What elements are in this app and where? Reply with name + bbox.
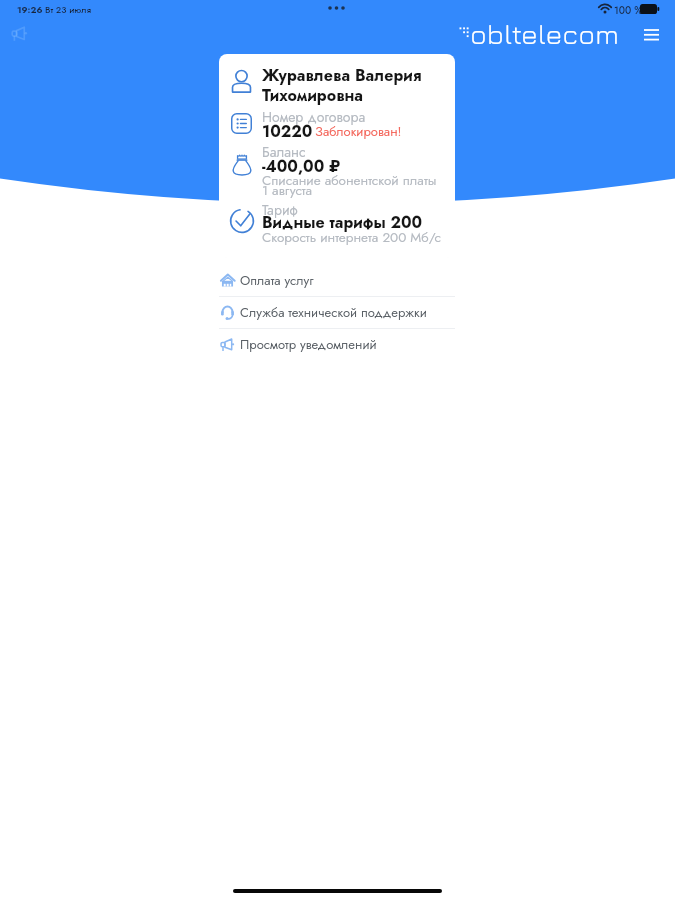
- staticText: Видные тарифы 200: [262, 211, 423, 234]
- staticText: Тариф: [262, 200, 298, 220]
- button[interactable]: Notifications: [8, 22, 31, 45]
- staticText: -400,00 ₽: [262, 155, 341, 178]
- staticText: Оплата услуг: [240, 271, 314, 290]
- staticText: 10220: [262, 120, 313, 143]
- button[interactable]: obltelecom: [458, 17, 620, 47]
- staticText: obltelecom: [470, 17, 620, 47]
- staticText: Вт 23 июля: [45, 3, 92, 16]
- staticText: Списание абонентской платы: [262, 171, 437, 191]
- staticText: 19:26: [17, 3, 43, 16]
- staticText: Тихомировна: [262, 84, 364, 107]
- staticText: Просмотр уведомлений: [240, 335, 377, 354]
- button[interactable]: Menu: [638, 21, 664, 47]
- button[interactable]: Просмотр уведомлений: [219, 329, 455, 360]
- button[interactable]: Служба технической поддержки: [219, 297, 455, 328]
- staticText: Служба технической поддержки: [240, 303, 427, 322]
- staticText: Баланс: [262, 142, 306, 162]
- staticText: Заблокирован!: [315, 122, 402, 141]
- button[interactable]: Оплата услуг: [219, 265, 455, 296]
- staticText: 100 %: [614, 3, 643, 17]
- staticText: Журавлева Валерия: [262, 64, 422, 87]
- staticText: 1 августа: [262, 181, 313, 201]
- staticText: Скорость интернета 200 Мб/с: [262, 228, 441, 248]
- staticText: Номер договора: [262, 107, 366, 127]
